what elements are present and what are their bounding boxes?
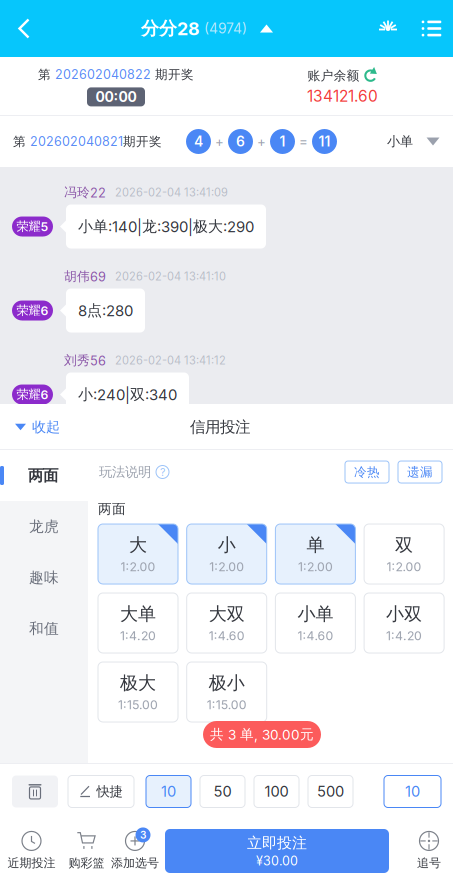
staticText: 快捷	[96, 783, 122, 800]
button[interactable]: 快捷	[68, 775, 134, 807]
staticText: 134121.60	[307, 87, 378, 105]
button[interactable]: 10	[146, 775, 191, 807]
staticText: 小	[218, 534, 236, 556]
button[interactable]: 立即投注	[165, 829, 389, 873]
button[interactable]: 近期投注	[0, 820, 63, 882]
staticText: 500	[317, 783, 344, 800]
staticText: 期开奖	[151, 67, 194, 82]
button[interactable]: 极小	[187, 662, 267, 722]
staticText: 2026-02-04 13:41:10	[115, 270, 226, 283]
staticText: 3	[140, 829, 146, 841]
staticText: 玩法说明	[99, 464, 151, 480]
staticText: 50	[213, 783, 231, 800]
staticText: 荣耀6	[16, 387, 48, 402]
staticText: 1	[279, 133, 285, 150]
button[interactable]: 小	[187, 524, 267, 584]
staticText: ?	[160, 465, 165, 478]
staticText: 202602040821	[30, 134, 123, 149]
button[interactable]: 小双	[364, 593, 444, 653]
staticText: 极大	[120, 672, 156, 694]
button[interactable]: 追号	[405, 820, 453, 882]
staticText: 11	[318, 133, 330, 150]
staticText: 1:15.00	[207, 697, 247, 712]
staticText: 1:2.00	[209, 559, 244, 574]
staticText: 202602040822	[55, 67, 151, 82]
button[interactable]: Menu	[410, 0, 453, 57]
staticText: 1:2.00	[120, 559, 155, 574]
staticText: 大双	[209, 603, 245, 625]
staticText: 和值	[29, 619, 59, 638]
staticText: 遗漏	[407, 464, 433, 480]
button[interactable]: 龙虎	[0, 501, 88, 552]
button[interactable]: 两面	[0, 450, 88, 501]
staticText: 4	[194, 133, 203, 150]
button[interactable]: 和值	[0, 603, 88, 654]
staticText: 小:240|双:340	[78, 385, 177, 404]
button[interactable]: Effects	[366, 0, 410, 57]
staticText: 冷热	[354, 464, 380, 480]
staticText: 1:4.60	[297, 628, 333, 643]
button[interactable]: 单	[275, 524, 355, 584]
staticText: 胡伟69	[64, 268, 106, 284]
button[interactable]: 购彩篮	[63, 820, 110, 882]
staticText: 1:4.20	[120, 628, 156, 643]
staticText: 账户余额	[307, 68, 359, 84]
staticText: 荣耀6	[16, 303, 48, 318]
button[interactable]: 极大	[98, 662, 178, 722]
staticText: 10	[405, 783, 420, 800]
button[interactable]: 10	[384, 775, 441, 807]
staticText: 2026-02-04 13:41:09	[115, 186, 228, 199]
staticText: 分分28	[141, 17, 200, 40]
button[interactable]: Select play	[413, 119, 453, 163]
staticText: 两面	[28, 466, 58, 485]
staticText: 1:4.20	[386, 628, 422, 643]
staticText: 1:2.00	[298, 559, 333, 574]
staticText: 刘秀56	[64, 352, 106, 368]
staticText: =	[299, 133, 308, 149]
button[interactable]: 大	[98, 524, 178, 584]
button[interactable]: Clear	[12, 775, 58, 807]
staticText: ¥30.00	[256, 853, 298, 868]
button[interactable]: 3	[110, 820, 160, 882]
staticText: 购彩篮	[68, 855, 104, 870]
staticText: 100	[264, 783, 288, 800]
button[interactable]: 收起	[0, 404, 112, 450]
staticText: 冯玲22	[64, 184, 106, 200]
staticText: 1:15.00	[118, 697, 158, 712]
staticText: 小单	[297, 603, 333, 625]
button[interactable]: 双	[364, 524, 444, 584]
button[interactable]: 大双	[187, 593, 267, 653]
staticText: 2026-02-04 13:41:12	[115, 354, 226, 367]
staticText: 第	[38, 67, 55, 82]
button[interactable]: 冷热	[345, 461, 389, 483]
button[interactable]: 遗漏	[398, 461, 442, 483]
staticText: 近期投注	[7, 855, 55, 870]
staticText: 极小	[209, 672, 245, 694]
button[interactable]: 大单	[98, 593, 178, 653]
staticText: 趣味	[29, 568, 59, 587]
staticText: 期开奖	[123, 134, 162, 149]
staticText: (4974)	[200, 20, 247, 37]
staticText: 单	[306, 534, 324, 556]
staticText: 大单	[120, 603, 156, 625]
staticText: 信用投注	[190, 417, 250, 437]
staticText: 6	[236, 133, 245, 150]
button[interactable]: 500	[308, 775, 353, 807]
button[interactable]: 小单	[275, 593, 355, 653]
staticText: 大	[129, 534, 147, 556]
staticText: 共 3 单, 30.00元	[210, 726, 314, 743]
staticText: 1:4.60	[209, 628, 245, 643]
staticText: 小双	[386, 603, 422, 625]
staticText: 10	[161, 783, 176, 800]
staticText: 第	[13, 134, 30, 149]
staticText: 收起	[32, 418, 60, 436]
staticText: 追号	[417, 855, 441, 870]
staticText: +	[257, 133, 266, 149]
button[interactable]: 趣味	[0, 552, 88, 603]
button[interactable]: 50	[200, 775, 245, 807]
button[interactable]: 100	[254, 775, 299, 807]
staticText: 荣耀5	[16, 219, 48, 234]
staticText: 双	[395, 534, 413, 556]
button[interactable]: Back	[0, 0, 48, 57]
staticText: 小单:140|龙:390|极大:290	[78, 217, 254, 236]
